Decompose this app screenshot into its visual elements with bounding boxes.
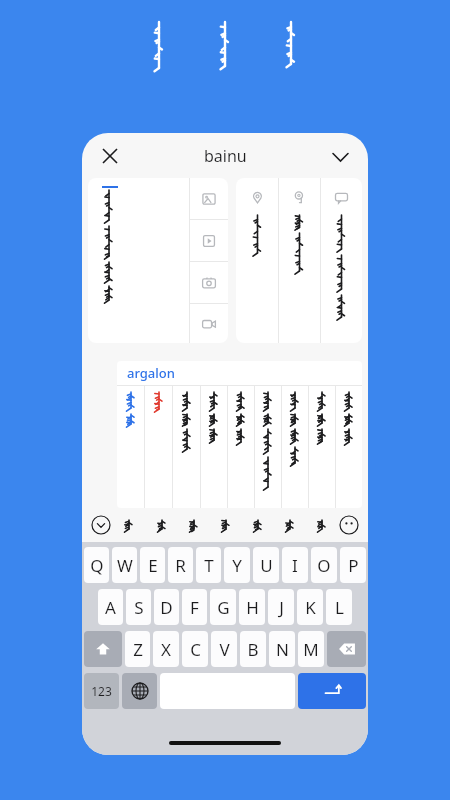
button[interactable] <box>210 508 242 542</box>
staticText: bainu <box>204 145 247 167</box>
button[interactable]: G <box>210 589 236 625</box>
staticText: I <box>292 554 298 577</box>
button[interactable] <box>282 386 308 508</box>
button[interactable]: X <box>153 631 179 667</box>
button[interactable] <box>228 386 254 508</box>
staticText: J <box>279 596 284 619</box>
button[interactable]: Send <box>298 673 366 709</box>
button[interactable]: T <box>196 547 221 583</box>
staticText: S <box>134 596 144 619</box>
button[interactable]: Chat <box>321 178 362 343</box>
button[interactable] <box>306 508 338 542</box>
staticText: T <box>204 554 214 577</box>
button[interactable]: Close <box>98 144 122 168</box>
button[interactable]: Video <box>190 304 228 343</box>
staticText: F <box>190 596 199 619</box>
button[interactable] <box>112 508 145 542</box>
staticText: R <box>175 554 186 577</box>
button[interactable]: Emoji <box>338 514 360 536</box>
button[interactable]: R <box>168 547 193 583</box>
staticText: E <box>148 554 158 577</box>
staticText: V <box>219 638 230 661</box>
button[interactable]: B <box>240 631 266 667</box>
button[interactable]: Pin <box>279 178 320 343</box>
button[interactable] <box>145 508 178 542</box>
staticText: Q <box>90 554 104 577</box>
staticText: L <box>335 596 344 619</box>
staticText: X <box>161 638 171 661</box>
button[interactable]: Confirm <box>328 144 352 168</box>
button[interactable] <box>309 386 335 508</box>
button[interactable]: D <box>154 589 179 625</box>
button[interactable]: Image <box>190 178 228 219</box>
staticText: K <box>305 596 316 619</box>
button[interactable] <box>201 386 227 508</box>
button[interactable]: Play <box>190 220 228 261</box>
staticText: D <box>160 596 173 619</box>
button[interactable]: Shift <box>84 631 122 667</box>
button[interactable] <box>117 386 144 508</box>
staticText: U <box>260 554 273 577</box>
button[interactable]: E <box>140 547 165 583</box>
staticText: argalon <box>127 364 175 382</box>
button[interactable] <box>255 386 281 508</box>
staticText: 123 <box>91 683 112 699</box>
staticText: H <box>246 596 259 619</box>
button[interactable]: S <box>126 589 151 625</box>
button[interactable]: Q <box>84 547 109 583</box>
staticText: G <box>217 596 230 619</box>
button[interactable]: C <box>182 631 208 667</box>
button[interactable]: 123 <box>84 673 119 709</box>
button[interactable]: Camera <box>190 262 228 303</box>
staticText: A <box>105 596 116 619</box>
staticText: Y <box>232 554 242 577</box>
staticText: P <box>348 554 359 577</box>
button[interactable]: M <box>298 631 324 667</box>
button[interactable]: K <box>297 589 323 625</box>
button[interactable]: Change language <box>122 673 157 709</box>
button[interactable]: I <box>282 547 308 583</box>
button[interactable]: U <box>253 547 279 583</box>
button[interactable] <box>173 386 200 508</box>
button[interactable] <box>274 508 306 542</box>
button[interactable]: F <box>182 589 207 625</box>
button[interactable] <box>178 508 210 542</box>
button[interactable]: Location <box>236 178 278 343</box>
button[interactable] <box>242 508 274 542</box>
button[interactable]: V <box>211 631 237 667</box>
staticText: O <box>317 554 331 577</box>
staticText: W <box>117 554 133 577</box>
button[interactable]: A <box>98 589 123 625</box>
staticText: M <box>303 638 319 661</box>
staticText: B <box>247 638 259 661</box>
button[interactable]: Hide keyboard <box>90 514 112 536</box>
staticText: N <box>276 638 289 661</box>
button[interactable]: J <box>268 589 294 625</box>
button[interactable]: P <box>340 547 366 583</box>
button[interactable]: Z <box>125 631 150 667</box>
button[interactable] <box>145 386 172 508</box>
button[interactable]: L <box>326 589 352 625</box>
staticText: Z <box>133 638 143 661</box>
button[interactable]: Backspace <box>327 631 366 667</box>
button[interactable]: W <box>112 547 137 583</box>
button[interactable]: O <box>311 547 337 583</box>
staticText: C <box>190 638 201 661</box>
button[interactable]: H <box>239 589 265 625</box>
button[interactable]: N <box>269 631 295 667</box>
button[interactable] <box>336 386 362 508</box>
button[interactable]: Y <box>224 547 250 583</box>
